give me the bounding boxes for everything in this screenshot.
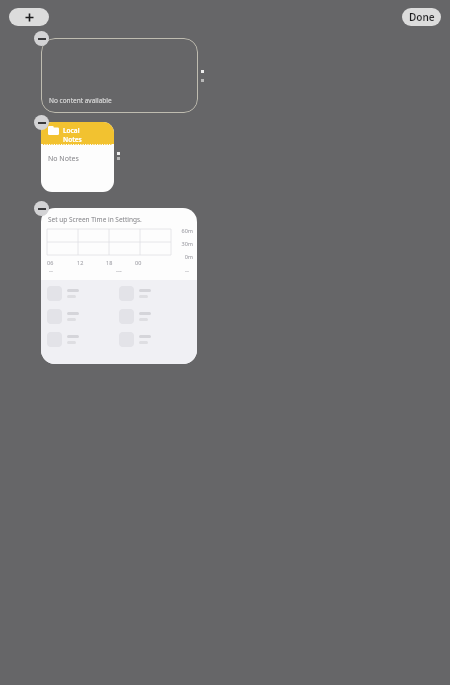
- staticText: Notes: [63, 135, 82, 144]
- staticText: 0m: [173, 253, 193, 260]
- staticText: No Notes: [48, 154, 79, 164]
- staticText: ---: [116, 267, 122, 275]
- button[interactable]: Done: [402, 8, 441, 26]
- staticText: 30m: [173, 240, 193, 247]
- staticText: 18: [106, 259, 113, 266]
- button[interactable]: Remove widget: [34, 115, 49, 130]
- button[interactable]: Set up Screen Time in Settings.: [41, 208, 197, 364]
- button[interactable]: Add widget: [9, 8, 49, 26]
- button[interactable]: No content available: [41, 38, 198, 113]
- button[interactable]: Local: [41, 122, 114, 192]
- staticText: 00: [135, 259, 142, 266]
- staticText: --: [185, 267, 189, 275]
- button[interactable]: Remove widget: [34, 31, 49, 46]
- staticText: 12: [77, 259, 84, 266]
- staticText: 60m: [173, 227, 193, 234]
- staticText: 06: [47, 259, 54, 266]
- staticText: No content available: [49, 96, 112, 105]
- button[interactable]: Remove widget: [34, 201, 49, 216]
- staticText: --: [49, 267, 53, 275]
- staticText: Set up Screen Time in Settings.: [48, 215, 142, 224]
- staticText: Done: [409, 10, 435, 24]
- staticText: Local: [63, 126, 80, 135]
